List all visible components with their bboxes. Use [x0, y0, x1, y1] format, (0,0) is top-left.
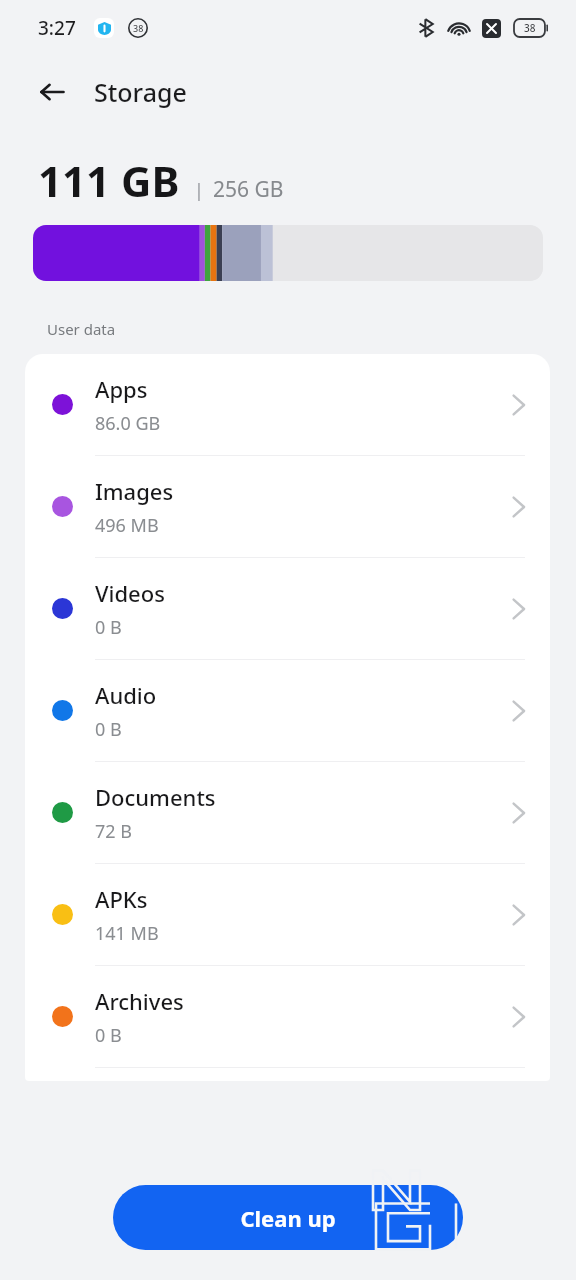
button[interactable]: Archives: [25, 966, 550, 1067]
staticText: 256 GB: [213, 175, 284, 204]
staticText: Videos: [95, 578, 165, 608]
staticText: 38: [133, 22, 144, 34]
button[interactable]: APKs: [25, 864, 550, 965]
staticText: Clean up: [240, 1203, 336, 1233]
staticText: 496 MB: [95, 513, 159, 538]
staticText: 0 B: [95, 717, 122, 742]
staticText: 0 B: [95, 1023, 122, 1048]
staticText: 86.0 GB: [95, 411, 161, 436]
staticText: 3:27: [38, 15, 76, 41]
staticText: Archives: [95, 986, 184, 1016]
staticText: Images: [95, 476, 174, 506]
staticText: Storage: [94, 75, 187, 109]
staticText: |: [194, 178, 204, 203]
button[interactable]: Apps: [25, 354, 550, 455]
staticText: Audio: [95, 680, 157, 710]
button[interactable]: Audio: [25, 660, 550, 761]
staticText: 72 B: [95, 819, 132, 844]
button[interactable]: Clean up: [113, 1185, 463, 1250]
staticText: APKs: [95, 884, 148, 914]
button[interactable]: Videos: [25, 558, 550, 659]
staticText: 141 MB: [95, 921, 159, 946]
staticText: 38: [524, 21, 536, 35]
staticText: 0 B: [95, 615, 122, 640]
staticText: 111 GB: [38, 152, 180, 209]
button[interactable]: Documents: [25, 762, 550, 863]
staticText: Documents: [95, 782, 216, 812]
staticText: Apps: [95, 374, 148, 404]
staticText: User data: [47, 319, 116, 339]
button[interactable]: Back: [30, 70, 74, 114]
button[interactable]: Images: [25, 456, 550, 557]
